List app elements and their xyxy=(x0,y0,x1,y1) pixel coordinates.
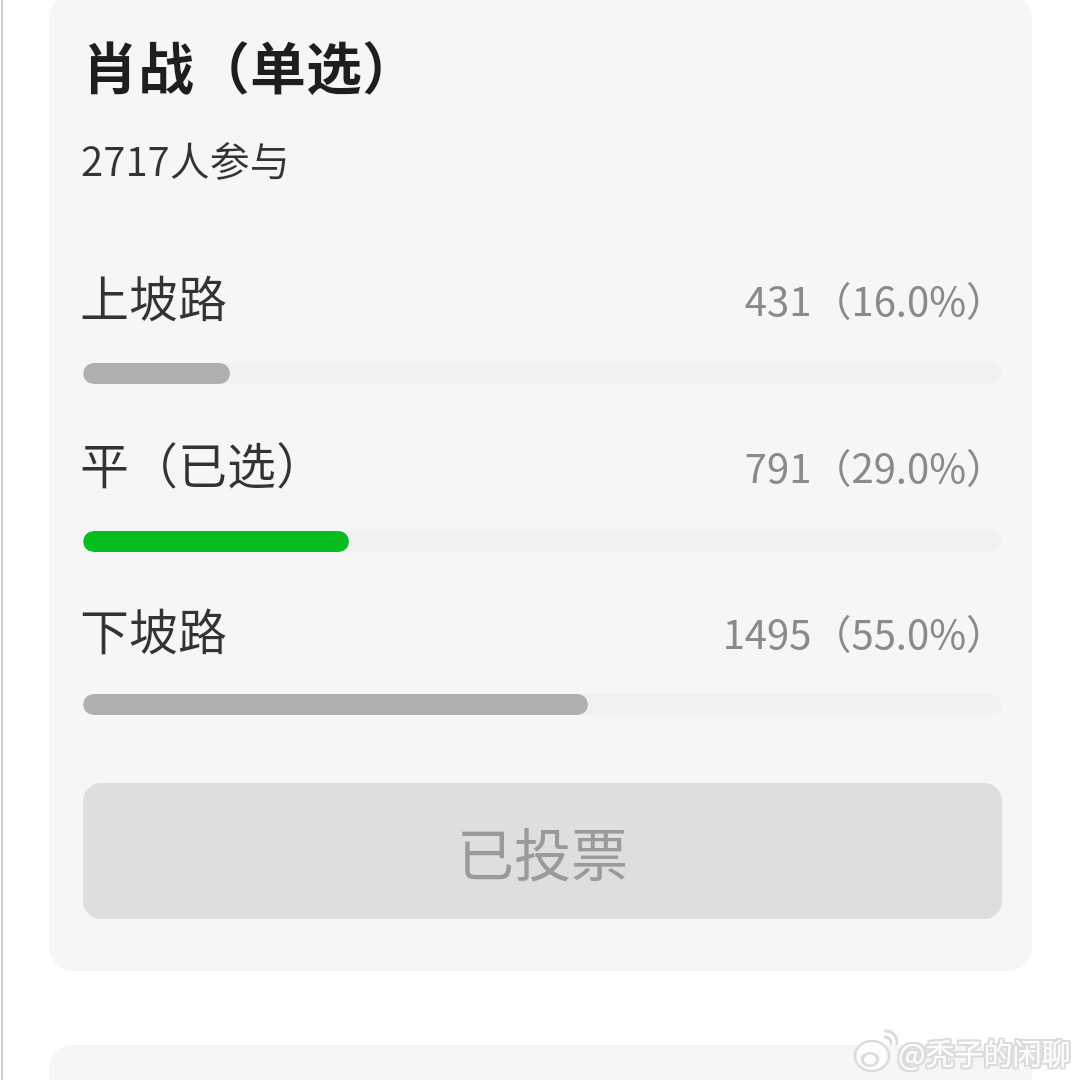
button[interactable]: 肖战（单选） xyxy=(82,24,418,105)
button[interactable] xyxy=(49,1045,1032,1080)
staticText: @秃子的闲聊 xyxy=(900,1031,1073,1073)
staticText: 平（已选） xyxy=(80,427,326,498)
staticText: 791（29.0%） xyxy=(600,437,1006,495)
staticText: @秃子的闲聊 xyxy=(898,1033,1071,1075)
staticText: @秃子的闲聊 xyxy=(900,1029,1073,1071)
button[interactable]: 平（已选） 791（29.0%） xyxy=(49,413,1032,565)
staticText: 431（16.0%） xyxy=(600,270,1006,328)
staticText: @秃子的闲聊 xyxy=(898,1029,1071,1071)
staticText: 已投票 xyxy=(457,810,628,893)
staticText: 2717人参与 xyxy=(81,130,290,188)
button[interactable]: 上坡路 431（16.0%） xyxy=(49,246,1032,397)
staticText: @秃子的闲聊 xyxy=(900,1033,1073,1075)
staticText: @秃子的闲聊 xyxy=(896,1033,1069,1075)
staticText: @秃子的闲聊 xyxy=(896,1029,1069,1071)
other: Weibo logo xyxy=(853,1030,899,1074)
staticText: @秃子的闲聊 xyxy=(896,1031,1069,1073)
staticText: 上坡路 xyxy=(80,260,228,331)
button[interactable]: 下坡路 1495（55.0%） xyxy=(49,579,1032,728)
staticText: 肖战（单选） xyxy=(82,24,418,105)
staticText: @秃子的闲聊 xyxy=(898,1031,1071,1073)
staticText: 1495（55.0%） xyxy=(600,603,1006,661)
button[interactable]: 已投票 xyxy=(83,783,1002,919)
staticText: 下坡路 xyxy=(80,593,228,664)
